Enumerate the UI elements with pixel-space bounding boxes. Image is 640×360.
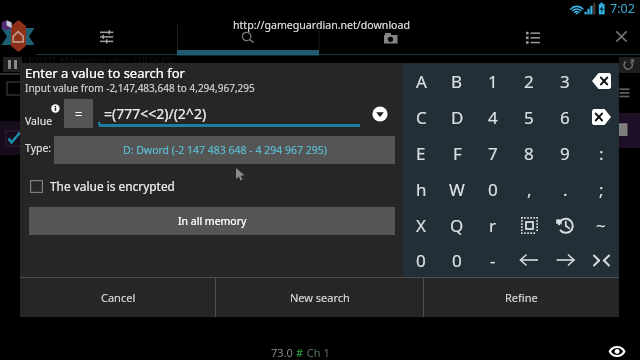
button[interactable]: Q — [439, 207, 475, 243]
button[interactable]: E — [403, 135, 439, 171]
staticText: In all memory — [178, 214, 247, 228]
staticText: 9 — [560, 142, 570, 165]
staticText: F — [453, 142, 462, 165]
staticText: 7 — [488, 142, 498, 165]
staticText: 0 — [452, 249, 462, 272]
staticText: B — [451, 70, 463, 93]
staticText: 0 — [416, 249, 426, 272]
staticText: X — [416, 214, 426, 237]
button[interactable]: Toggle visibility — [609, 345, 626, 358]
button[interactable]: . — [547, 171, 583, 207]
button[interactable]: Search — [240, 30, 256, 46]
staticText: C — [416, 106, 427, 129]
button[interactable]: History — [547, 207, 583, 243]
button[interactable]: W — [439, 171, 475, 207]
button[interactable]: Cancel — [20, 277, 216, 317]
staticText: Value — [25, 114, 53, 128]
staticText: 8 — [524, 142, 534, 165]
staticText: http://gameguardian.net/download — [233, 18, 410, 32]
button[interactable]: Screenshot — [384, 33, 398, 44]
button[interactable]: r — [475, 207, 511, 243]
staticText: 0 — [488, 178, 498, 201]
staticText: 5 — [524, 106, 534, 129]
button[interactable]: D: Dword (-2 147 483 648 - 4 294 967 295… — [54, 136, 395, 164]
button[interactable]: A — [403, 63, 439, 99]
staticText: Ch 1 — [304, 345, 330, 360]
button[interactable]: Show options — [372, 106, 388, 122]
staticText: New search — [290, 290, 350, 305]
button[interactable]: Operator — [64, 99, 93, 128]
staticText: 4 — [488, 106, 498, 129]
button[interactable]: 8 — [511, 135, 547, 171]
staticText: Input value from -2,147,483,648 to 4,294… — [25, 81, 255, 95]
button[interactable]: Close — [616, 31, 627, 42]
staticText: 7:02 — [610, 0, 635, 17]
staticText: 6 — [560, 106, 570, 129]
button[interactable]: Hide keyboard — [583, 243, 619, 277]
button[interactable]: 4 — [475, 99, 511, 135]
button[interactable]: 9 — [547, 135, 583, 171]
staticText: A — [416, 70, 427, 93]
button[interactable]: h — [403, 171, 439, 207]
staticText: E — [416, 142, 426, 165]
staticText: h — [416, 178, 427, 201]
staticText: . — [563, 178, 568, 201]
staticText: = — [75, 105, 83, 123]
staticText: ; — [599, 178, 604, 201]
staticText: - — [490, 249, 496, 272]
button[interactable]: Delete — [583, 99, 619, 135]
staticText: The value is encrypted — [50, 178, 175, 194]
staticText: =(777<<2)/(2^2) — [104, 104, 207, 123]
staticText: Refine — [505, 290, 538, 305]
button[interactable]: Move right — [547, 243, 583, 277]
button[interactable]: ; — [583, 171, 619, 207]
button[interactable]: 1 — [475, 63, 511, 99]
button[interactable]: Move left — [511, 243, 547, 277]
staticText: Q — [450, 214, 464, 237]
button[interactable]: F — [439, 135, 475, 171]
button[interactable]: 0 — [475, 171, 511, 207]
staticText: # — [296, 345, 304, 360]
button[interactable]: 6 — [547, 99, 583, 135]
staticText: r — [489, 214, 497, 237]
button[interactable]: D — [439, 99, 475, 135]
button[interactable]: 3 — [547, 63, 583, 99]
button[interactable]: 5 — [511, 99, 547, 135]
button[interactable]: The value is encrypted — [30, 175, 220, 197]
staticText: D — [451, 106, 464, 129]
button[interactable]: , — [511, 171, 547, 207]
staticText: D: Dword (-2 147 483 648 - 4 294 967 295… — [123, 143, 327, 157]
staticText: Cancel — [101, 290, 136, 305]
staticText: W — [449, 178, 465, 201]
button[interactable]: 0 — [403, 243, 439, 277]
button[interactable]: Menu — [526, 31, 540, 43]
button[interactable]: New search — [216, 277, 424, 317]
staticText: 3 — [560, 70, 570, 93]
button[interactable]: : — [583, 135, 619, 171]
staticText: 2 — [524, 70, 534, 93]
staticText: 73.0 — [271, 345, 296, 360]
staticText: Type: — [25, 141, 52, 155]
staticText: ~ — [596, 214, 606, 237]
button[interactable]: 2 — [511, 63, 547, 99]
button[interactable]: X — [403, 207, 439, 243]
button[interactable]: Settings — [99, 29, 115, 45]
staticText: , — [527, 178, 532, 201]
staticText: 1 — [488, 70, 498, 93]
button[interactable]: ~ — [583, 207, 619, 243]
button[interactable]: Backspace — [583, 63, 619, 99]
button[interactable]: C — [403, 99, 439, 135]
button[interactable]: 7 — [475, 135, 511, 171]
staticText: Enter a value to search for — [25, 64, 185, 82]
button[interactable]: In all memory — [29, 207, 395, 235]
staticText: : — [599, 142, 604, 165]
button[interactable]: Select all — [511, 207, 547, 243]
button[interactable]: Refine — [424, 277, 619, 317]
button[interactable]: 0 — [439, 243, 475, 277]
button[interactable]: - — [475, 243, 511, 277]
button[interactable]: B — [439, 63, 475, 99]
staticText: [40042] Maxammo <int> [10.0648] — [24, 54, 174, 66]
